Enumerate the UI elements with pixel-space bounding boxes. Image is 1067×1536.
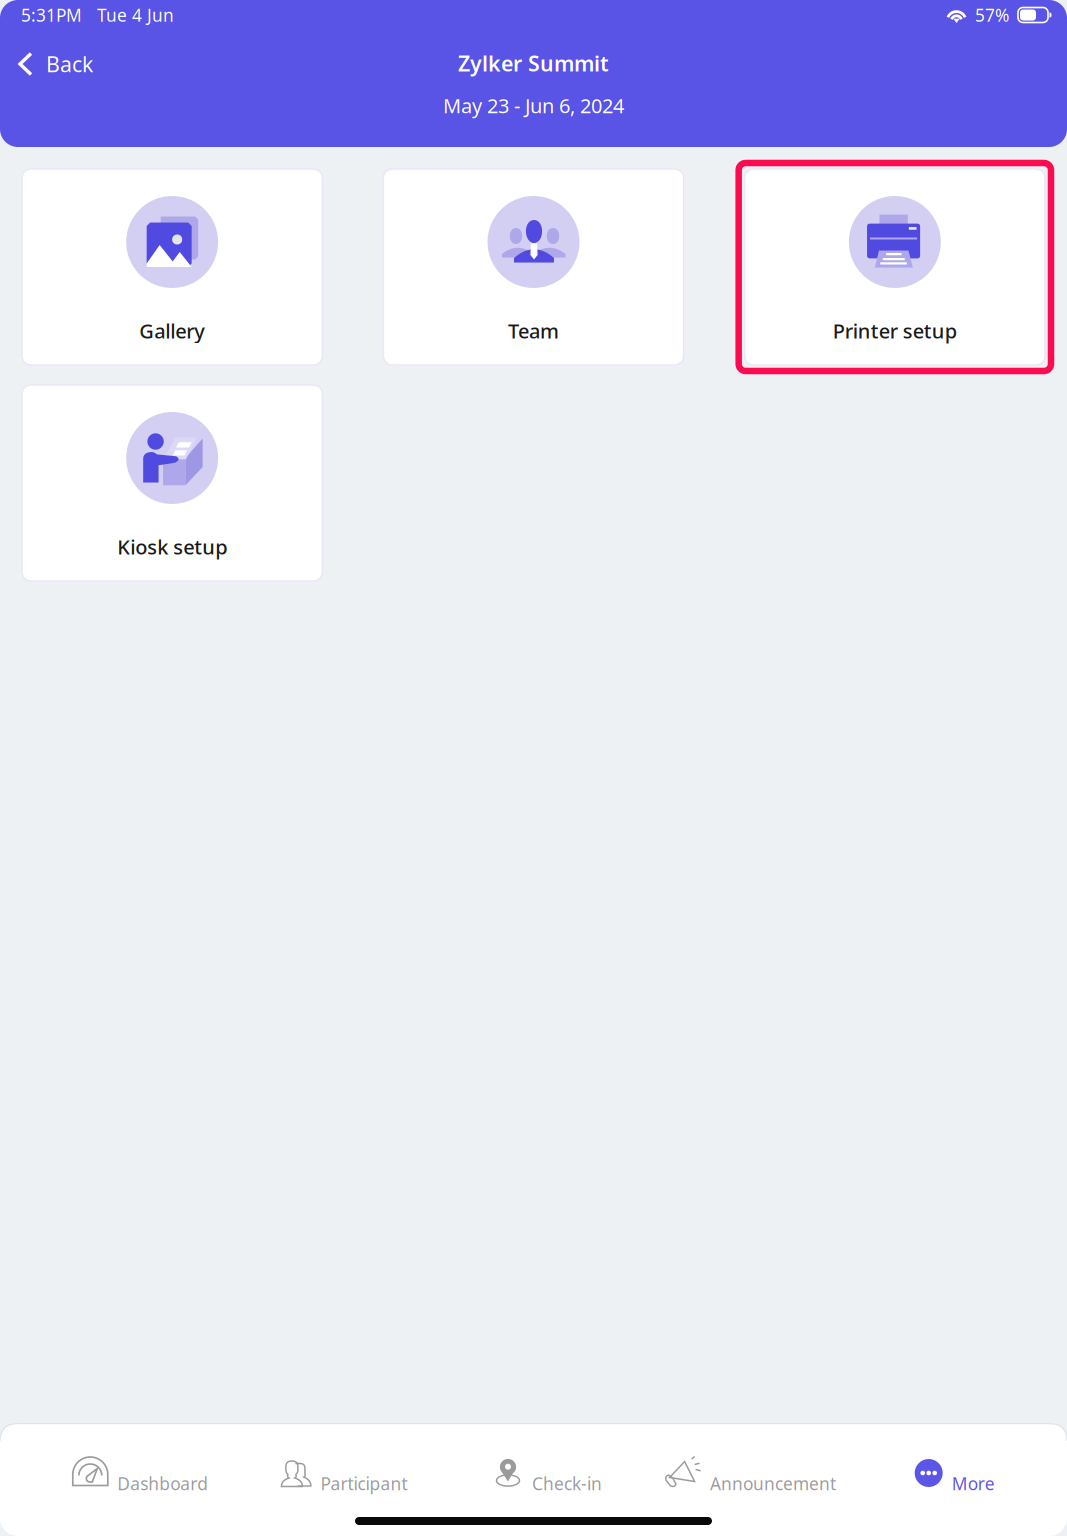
button[interactable]: Kiosk setup	[22, 385, 322, 581]
button[interactable]: Printer setup	[745, 169, 1045, 365]
button[interactable]: Announcement	[649, 1451, 852, 1507]
staticText: 5:31PM	[21, 3, 82, 26]
staticText: May 23 - Jun 6, 2024	[443, 92, 624, 119]
staticText: Dashboard	[117, 1472, 208, 1495]
button[interactable]: Check-in	[445, 1451, 649, 1507]
button[interactable]: More	[852, 1451, 1056, 1507]
staticText: Printer setup	[833, 317, 957, 344]
staticText: Back	[46, 50, 93, 78]
staticText: Gallery	[139, 317, 205, 344]
staticText: Tue 4 Jun	[97, 3, 174, 26]
staticText: Zylker Summit	[458, 49, 609, 77]
staticText: Participant	[320, 1472, 407, 1495]
button[interactable]: Back	[0, 41, 107, 87]
button[interactable]: Dashboard	[38, 1451, 242, 1507]
staticText: 57%	[975, 3, 1009, 26]
button[interactable]: Participant	[242, 1451, 445, 1507]
staticText: Team	[508, 317, 559, 344]
staticText: Kiosk setup	[117, 533, 227, 560]
staticText: More	[952, 1472, 995, 1495]
staticText: Announcement	[710, 1472, 836, 1495]
staticText: Check-in	[532, 1472, 602, 1495]
button[interactable]: Gallery	[22, 169, 322, 365]
button[interactable]: Team	[383, 169, 684, 365]
